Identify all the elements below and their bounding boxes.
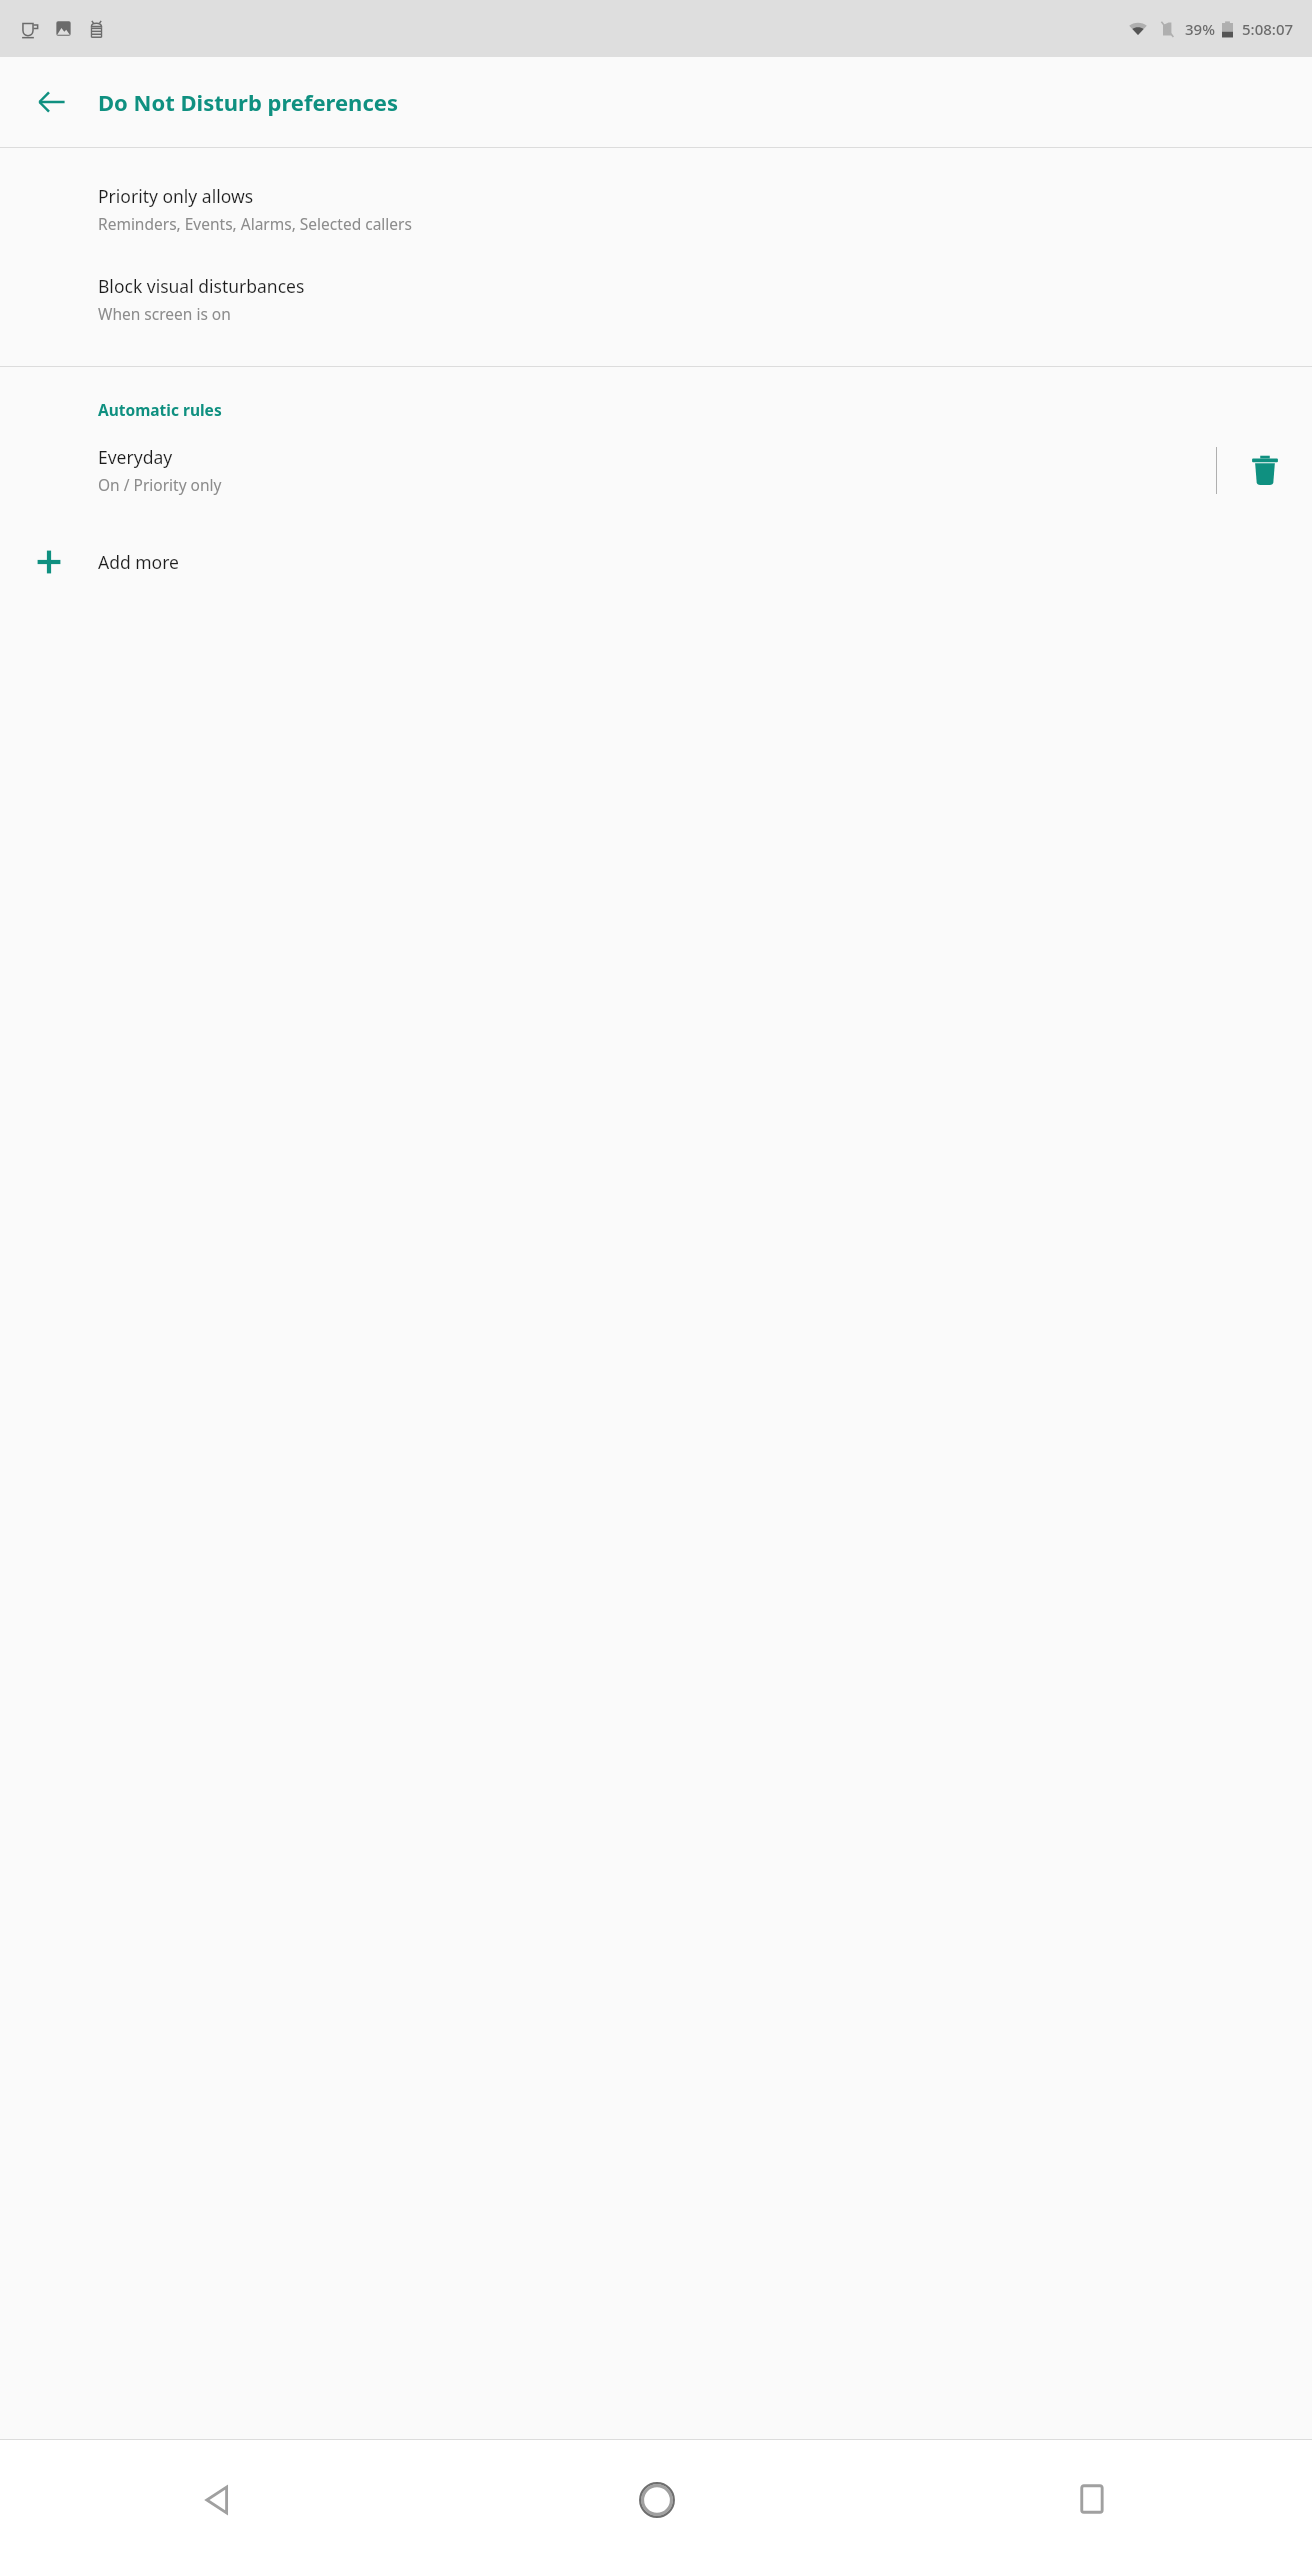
button[interactable]: Recent apps	[875, 2440, 1312, 2560]
staticText: Block visual disturbances	[98, 274, 305, 298]
button[interactable]: Add more	[0, 516, 1312, 608]
staticText: Priority only allows	[98, 184, 254, 208]
button[interactable]: Home	[438, 2440, 875, 2560]
staticText: Add more	[98, 550, 179, 574]
staticText: On / Priority only	[98, 474, 222, 495]
button[interactable]: Back	[24, 74, 80, 130]
staticText: Automatic rules	[98, 399, 222, 420]
button[interactable]: Everyday	[0, 433, 1216, 507]
button[interactable]: Delete rule	[1217, 424, 1312, 516]
button[interactable]: Back	[0, 2440, 438, 2560]
staticText: Do Not Disturb preferences	[98, 87, 398, 117]
staticText: Reminders, Events, Alarms, Selected call…	[98, 213, 412, 234]
staticText: 39%	[1185, 19, 1215, 39]
staticText: Everyday	[98, 445, 173, 469]
staticText: When screen is on	[98, 303, 231, 324]
button[interactable]: Priority only allows	[0, 168, 1312, 244]
button[interactable]: Block visual disturbances	[0, 244, 1312, 334]
staticText: 5:08:07	[1242, 19, 1294, 39]
